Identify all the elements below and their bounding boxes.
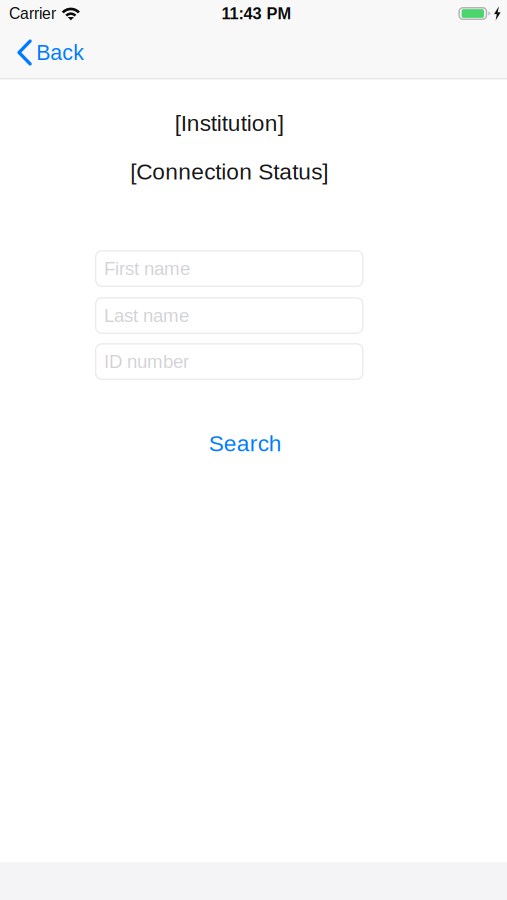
- button[interactable]: Back: [0, 30, 96, 75]
- staticText: First name: [104, 258, 190, 279]
- staticText: Back: [36, 41, 84, 64]
- button[interactable]: First name: [95, 250, 363, 287]
- staticText: [Institution]: [175, 111, 284, 136]
- button[interactable]: Last name: [95, 297, 363, 334]
- staticText: Last name: [104, 305, 189, 326]
- staticText: Carrier: [9, 5, 56, 22]
- button[interactable]: ID number: [95, 343, 363, 380]
- staticText: ID number: [104, 351, 189, 372]
- staticText: [Connection Status]: [130, 159, 328, 184]
- staticText: 11:43 PM: [221, 4, 291, 23]
- staticText: Search: [209, 431, 282, 456]
- button[interactable]: Search: [195, 421, 296, 466]
